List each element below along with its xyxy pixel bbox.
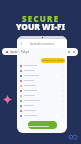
button[interactable] [20,78,64,83]
button[interactable] [20,98,64,103]
button[interactable] [60,48,78,56]
button[interactable]: Back [19,41,24,46]
button[interactable] [20,88,64,93]
button[interactable] [20,63,64,68]
staticText: Japan - Tokyo [10,50,30,54]
staticText: SECURE [22,13,60,24]
button[interactable] [20,103,64,108]
staticText: Available locations [30,42,55,46]
button[interactable] [20,108,64,113]
button[interactable] [20,93,64,98]
button[interactable] [20,73,64,78]
staticText: YOUR WI-FI [16,21,66,32]
staticText: DOWNLOAD FULL VERSION [28,124,57,127]
button[interactable] [20,113,64,118]
button[interactable] [20,68,64,73]
button[interactable] [20,83,64,88]
button[interactable]: Available VPN servers [41,58,65,63]
button[interactable]: DOWNLOAD FULL VERSION [28,121,57,129]
staticText: Available VPN servers [42,59,65,62]
button[interactable]: Japan - Tokyo [2,48,36,55]
